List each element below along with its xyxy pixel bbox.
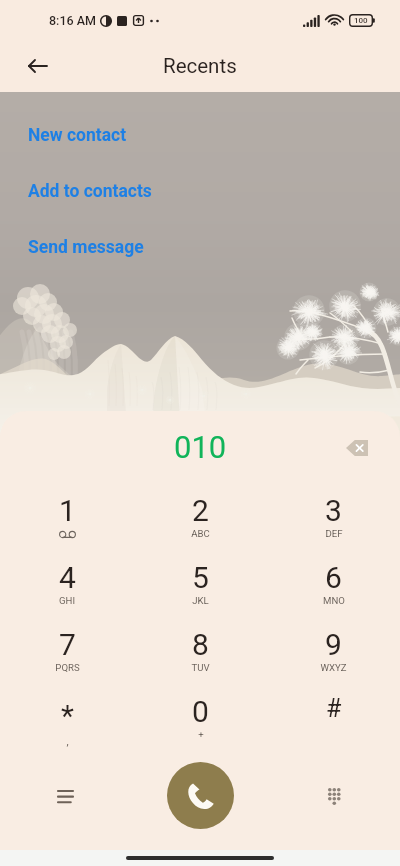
- staticText: ,: [66, 735, 69, 748]
- staticText: 100: [354, 16, 368, 25]
- button[interactable]: More options: [45, 776, 85, 816]
- staticText: 8: [192, 627, 209, 662]
- button[interactable]: 1: [0, 493, 134, 560]
- button[interactable]: *: [0, 694, 134, 761]
- staticText: GHI: [59, 595, 75, 606]
- staticText: 010: [174, 429, 227, 465]
- staticText: 9: [325, 627, 342, 662]
- button[interactable]: 6: [267, 560, 400, 627]
- button[interactable]: 2: [134, 493, 267, 560]
- staticText: TUV: [191, 662, 210, 673]
- staticText: ABC: [191, 528, 210, 539]
- button[interactable]: Add to contacts: [28, 181, 152, 202]
- button[interactable]: New contact: [28, 125, 127, 146]
- button[interactable]: 9: [267, 627, 400, 694]
- staticText: #: [326, 694, 342, 723]
- button[interactable]: 0: [134, 694, 267, 761]
- staticText: 6: [325, 560, 342, 595]
- button[interactable]: 7: [0, 627, 134, 694]
- button[interactable]: Dialpad: [314, 776, 354, 816]
- button[interactable]: 4: [0, 560, 134, 627]
- staticText: Send message: [28, 237, 144, 258]
- staticText: New contact: [28, 125, 127, 146]
- button[interactable]: 5: [134, 560, 267, 627]
- button[interactable]: Back: [18, 46, 58, 86]
- staticText: Add to contacts: [28, 181, 152, 202]
- staticText: JKL: [192, 595, 209, 606]
- staticText: Recents: [163, 54, 237, 78]
- staticText: MNO: [323, 595, 345, 606]
- staticText: PQRS: [55, 662, 80, 673]
- staticText: 3: [325, 493, 342, 528]
- button[interactable]: #: [267, 694, 400, 761]
- staticText: 8:16 AM: [49, 13, 96, 28]
- button[interactable]: Call: [167, 762, 234, 829]
- button[interactable]: 3: [267, 493, 400, 560]
- staticText: 7: [59, 627, 76, 662]
- staticText: 5: [192, 560, 209, 595]
- staticText: DEF: [325, 528, 343, 539]
- staticText: +: [198, 729, 204, 740]
- button[interactable]: 8: [134, 627, 267, 694]
- button[interactable]: Send message: [28, 237, 144, 258]
- staticText: 0: [192, 694, 209, 729]
- staticText: 2: [192, 493, 209, 528]
- staticText: 4: [59, 560, 76, 595]
- button[interactable]: Backspace: [338, 429, 376, 467]
- staticText: *: [61, 698, 74, 733]
- staticText: WXYZ: [320, 662, 347, 673]
- staticText: 1: [59, 493, 76, 528]
